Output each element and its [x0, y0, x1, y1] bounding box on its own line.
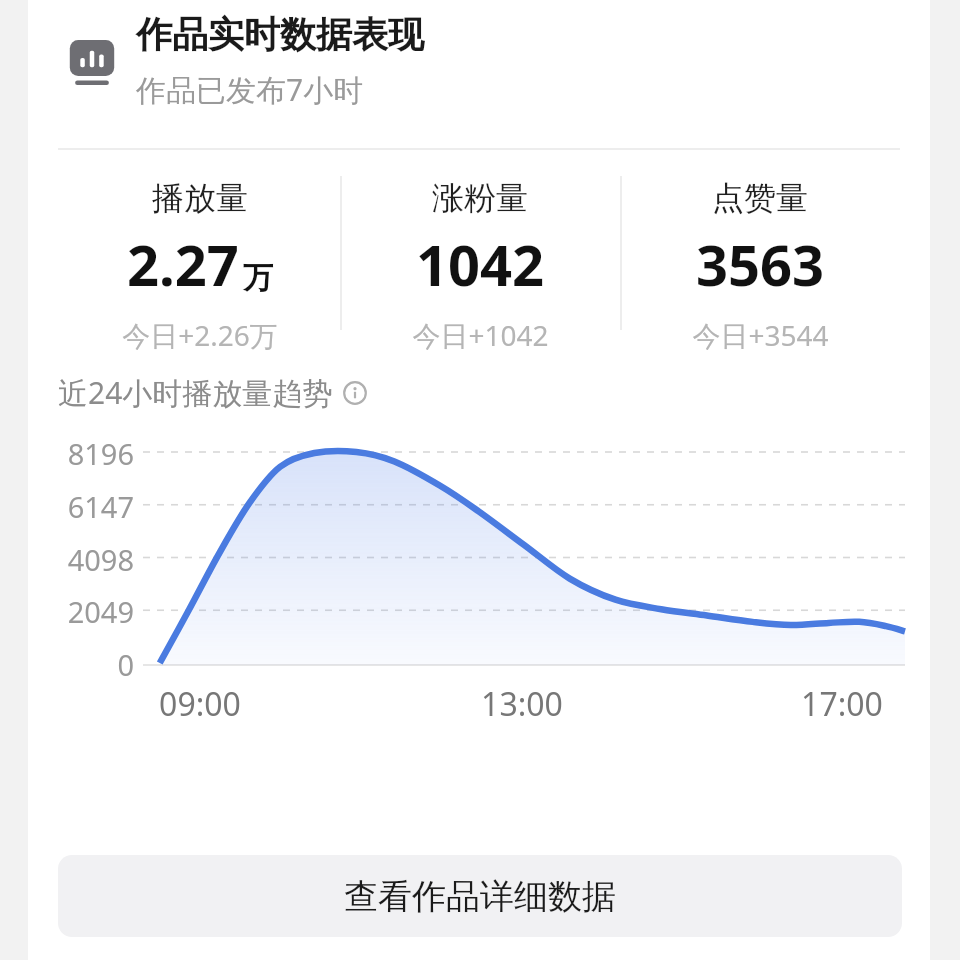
staticText: 6147: [28, 487, 134, 526]
staticText: 4098: [28, 540, 134, 579]
staticText: 13:00: [452, 682, 592, 726]
staticText: 2049: [28, 592, 134, 631]
staticText: 17:00: [772, 682, 912, 726]
button[interactable]: 查看作品详细数据: [58, 855, 902, 937]
staticText: 今日+1042: [412, 316, 549, 354]
button[interactable]: 说明: [343, 381, 367, 405]
staticText: 今日+3544: [692, 316, 829, 354]
staticText: 作品实时数据表现: [136, 12, 424, 57]
staticText: 近24小时播放量趋势: [58, 372, 333, 413]
staticText: 万: [243, 259, 273, 297]
staticText: 涨粉量: [432, 178, 528, 218]
staticText: 今日+2.26万: [122, 316, 278, 354]
staticText: 作品已发布7小时: [136, 69, 364, 110]
staticText: 09:00: [130, 682, 270, 726]
staticText: 1042: [416, 226, 545, 302]
button[interactable]: 点赞量: [630, 178, 890, 354]
staticText: 查看作品详细数据: [344, 875, 616, 918]
staticText: 播放量: [152, 178, 248, 218]
button[interactable]: 涨粉量: [350, 178, 610, 354]
staticText: 点赞量: [712, 178, 808, 218]
button[interactable]: 播放量: [70, 178, 330, 354]
staticText: 8196: [28, 434, 134, 473]
staticText: 3563: [696, 226, 825, 302]
staticText: 2.27: [127, 226, 239, 302]
staticText: 0: [28, 645, 134, 684]
